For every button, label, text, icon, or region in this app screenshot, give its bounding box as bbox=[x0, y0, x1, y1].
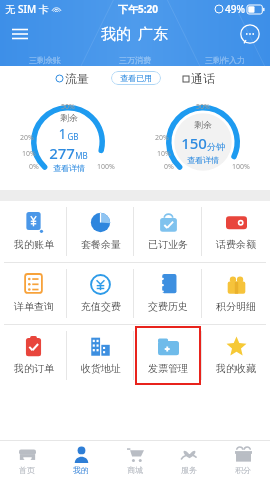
staticText: 100% bbox=[232, 162, 250, 172]
button[interactable]: 已订业务 bbox=[134, 201, 202, 262]
staticText: 充值交费 bbox=[81, 300, 121, 313]
staticText: 通话 bbox=[191, 71, 215, 86]
staticText: 查看已用 bbox=[120, 73, 152, 83]
staticText: 我的账单 bbox=[14, 238, 54, 251]
staticText: 积分 bbox=[235, 465, 251, 475]
button[interactable]: 查看已用 bbox=[111, 71, 161, 85]
staticText: MB bbox=[75, 150, 88, 161]
button[interactable]: 我的 bbox=[54, 441, 108, 479]
staticText: 话费余额 bbox=[216, 238, 256, 251]
staticText: 流量 bbox=[65, 71, 89, 86]
button[interactable]: 积分明细 bbox=[202, 263, 270, 324]
button[interactable]: 查看详情 bbox=[187, 155, 219, 165]
staticText: 分钟 bbox=[207, 141, 225, 152]
staticText: 我的订单 bbox=[14, 362, 54, 375]
staticText: GB bbox=[67, 131, 79, 142]
staticText: 三万消费 bbox=[119, 55, 151, 65]
button[interactable]: 话费余额 bbox=[202, 201, 270, 262]
staticText: 商城 bbox=[127, 465, 143, 475]
staticText: 首页 bbox=[19, 465, 35, 475]
button[interactable]: 商城 bbox=[108, 441, 162, 479]
staticText: 0% bbox=[164, 162, 174, 172]
button[interactable]: 积分 bbox=[216, 441, 270, 479]
button[interactable]: 通话 bbox=[183, 71, 215, 86]
staticText: 收货地址 bbox=[81, 362, 121, 375]
staticText: 积分明细 bbox=[216, 300, 256, 313]
staticText: 三剩余账 bbox=[29, 55, 61, 65]
button[interactable]: 流量 bbox=[56, 71, 89, 86]
staticText: 100% bbox=[97, 162, 115, 172]
staticText: 三剩作入力 bbox=[205, 55, 245, 65]
staticText: 10% bbox=[157, 149, 171, 159]
staticText: 0% bbox=[29, 162, 39, 172]
staticText: 20% bbox=[155, 133, 169, 143]
staticText: 1 bbox=[58, 124, 67, 143]
staticText: 277 bbox=[49, 143, 75, 163]
button[interactable]: Menu bbox=[0, 18, 40, 50]
button[interactable]: 服务 bbox=[162, 441, 216, 479]
staticText: 无 SIM 卡 bbox=[5, 2, 49, 16]
staticText: 广东 bbox=[138, 25, 168, 44]
staticText: 49% bbox=[225, 2, 245, 16]
button[interactable]: Chat bbox=[230, 18, 270, 50]
staticText: 10% bbox=[22, 149, 36, 159]
staticText: 我的 bbox=[73, 465, 89, 475]
staticText: 交费历史 bbox=[148, 300, 188, 313]
button[interactable]: 我的订单 bbox=[0, 325, 67, 386]
staticText: 150 bbox=[181, 133, 207, 153]
staticText: 我的收藏 bbox=[216, 362, 256, 375]
button[interactable]: 收货地址 bbox=[67, 325, 134, 386]
button[interactable]: 首页 bbox=[0, 441, 54, 479]
button[interactable]: 我的 bbox=[101, 25, 168, 44]
button[interactable]: 我的收藏 bbox=[202, 325, 270, 386]
button[interactable]: 套餐余量 bbox=[67, 201, 134, 262]
staticText: 剩余 bbox=[60, 112, 78, 123]
staticText: 已订业务 bbox=[148, 238, 188, 251]
staticText: 剩余 bbox=[194, 119, 212, 130]
button[interactable]: 查看详情 bbox=[53, 163, 85, 173]
staticText: 20% bbox=[20, 133, 34, 143]
staticText: 50% bbox=[196, 102, 210, 112]
button[interactable]: 交费历史 bbox=[134, 263, 202, 324]
button[interactable]: 我的账单 bbox=[0, 201, 67, 262]
staticText: 50% bbox=[61, 102, 75, 112]
staticText: 详单查询 bbox=[14, 300, 54, 313]
staticText: 服务 bbox=[181, 465, 197, 475]
button[interactable]: 详单查询 bbox=[0, 263, 67, 324]
staticText: 下午5:20 bbox=[118, 2, 158, 16]
staticText: 发票管理 bbox=[148, 362, 188, 375]
button[interactable]: 充值交费 bbox=[67, 263, 134, 324]
staticText: 套餐余量 bbox=[81, 238, 121, 251]
staticText: 我的 bbox=[101, 25, 131, 44]
button[interactable]: 发票管理 bbox=[134, 325, 202, 386]
